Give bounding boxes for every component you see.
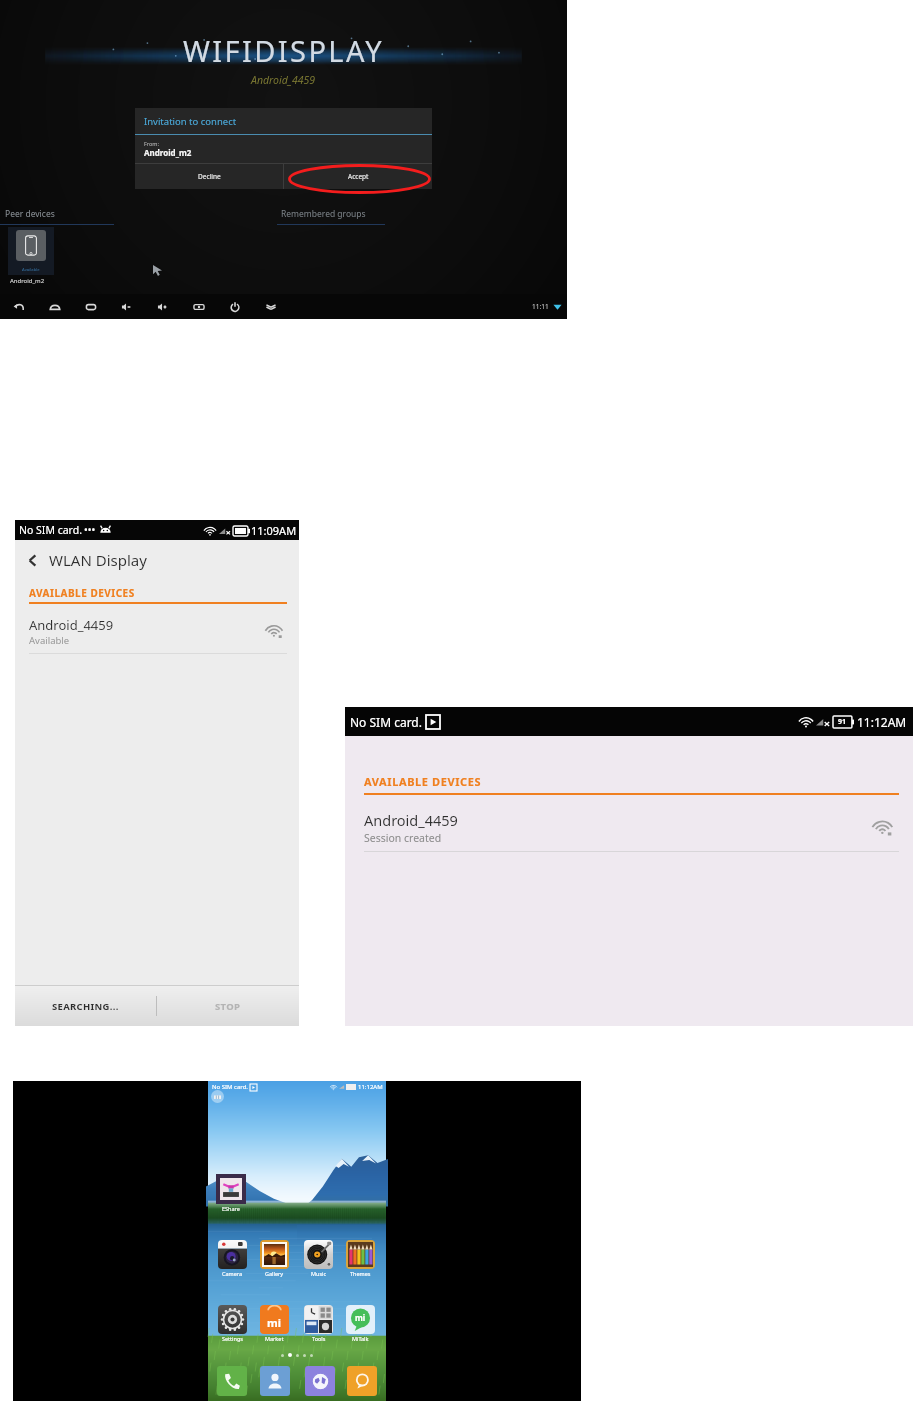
staticText: AVAILABLE DEVICES xyxy=(29,586,135,600)
button[interactable]: STOP xyxy=(157,986,299,1026)
button[interactable]: Back xyxy=(15,540,49,580)
button[interactable]: Music xyxy=(304,1240,333,1277)
button[interactable]: Settings xyxy=(218,1305,247,1342)
button[interactable]: Android_m2 peer device xyxy=(8,227,54,275)
staticText: SEARCHING... xyxy=(52,1000,119,1013)
button[interactable]: Back xyxy=(1,294,37,319)
button[interactable]: Messaging xyxy=(347,1366,377,1396)
staticText: mi xyxy=(267,1315,282,1330)
staticText: 11:09AM xyxy=(251,523,297,538)
button[interactable]: Home xyxy=(37,294,73,319)
button[interactable]: VolDown xyxy=(109,294,145,319)
button[interactable]: SEARCHING... xyxy=(15,986,156,1026)
staticText: MiTalk xyxy=(352,1335,369,1342)
staticText: No SIM card. xyxy=(212,1083,248,1091)
staticText: No SIM card. xyxy=(350,714,422,730)
staticText: Camera xyxy=(222,1270,243,1277)
staticText: Android_m2 xyxy=(144,147,192,158)
button[interactable]: VolUp xyxy=(145,294,181,319)
button[interactable]: EShare xyxy=(216,1174,246,1204)
button[interactable]: Accept xyxy=(284,164,432,189)
staticText: Peer devices xyxy=(5,208,55,220)
staticText: Themes xyxy=(350,1270,371,1277)
button[interactable]: Tools xyxy=(304,1305,333,1342)
staticText: No SIM card. xyxy=(19,523,82,537)
staticText: ••• xyxy=(84,523,96,537)
staticText: Android_m2 xyxy=(10,277,45,285)
staticText: From: xyxy=(144,140,159,147)
staticText: Market xyxy=(265,1335,284,1342)
staticText: Accept xyxy=(348,172,369,181)
staticText: Android_4459 xyxy=(29,616,114,634)
staticText: Decline xyxy=(198,172,221,181)
button[interactable]: mi xyxy=(260,1305,289,1342)
staticText: 11:12AM xyxy=(857,714,907,730)
button[interactable]: Camera xyxy=(218,1240,247,1277)
staticText: Music xyxy=(311,1270,327,1277)
button[interactable]: mi xyxy=(346,1305,375,1342)
staticText: Tools xyxy=(312,1335,326,1342)
button[interactable]: Browser xyxy=(305,1366,335,1396)
staticText: Session created xyxy=(364,831,442,845)
staticText: STOP xyxy=(215,1000,241,1013)
staticText: Available xyxy=(29,634,70,647)
button[interactable]: Collapse xyxy=(253,294,289,319)
button[interactable]: Contacts xyxy=(260,1366,290,1396)
staticText: Gallery xyxy=(265,1270,284,1277)
button[interactable]: Android_4459 xyxy=(15,610,299,652)
button[interactable]: Widget xyxy=(211,1090,224,1103)
staticText: AVAILABLE DEVICES xyxy=(364,774,482,789)
button[interactable]: Themes xyxy=(346,1240,375,1277)
button[interactable]: Recents xyxy=(73,294,109,319)
staticText: 91 xyxy=(838,717,847,727)
button[interactable]: Android_4459 xyxy=(345,804,913,851)
staticText: Android_4459 xyxy=(251,73,316,87)
staticText: Settings xyxy=(222,1335,243,1342)
staticText: WIFIDISPLAY xyxy=(183,31,384,70)
staticText: Android_4459 xyxy=(364,810,458,830)
button[interactable]: Decline xyxy=(135,164,283,189)
staticText: EShare xyxy=(222,1205,240,1212)
staticText: mi xyxy=(355,1312,366,1323)
button[interactable]: Gallery xyxy=(260,1240,289,1277)
button[interactable]: Screenshot xyxy=(181,294,217,319)
staticText: 11:11 xyxy=(532,302,549,311)
staticText: Invitation to connect xyxy=(144,115,237,128)
staticText: Remembered groups xyxy=(281,208,366,220)
button[interactable]: Power xyxy=(217,294,253,319)
staticText: WLAN Display xyxy=(49,550,147,570)
staticText: 11:12AM xyxy=(358,1083,383,1091)
button[interactable]: Phone xyxy=(217,1366,247,1396)
staticText: Available xyxy=(22,267,40,273)
